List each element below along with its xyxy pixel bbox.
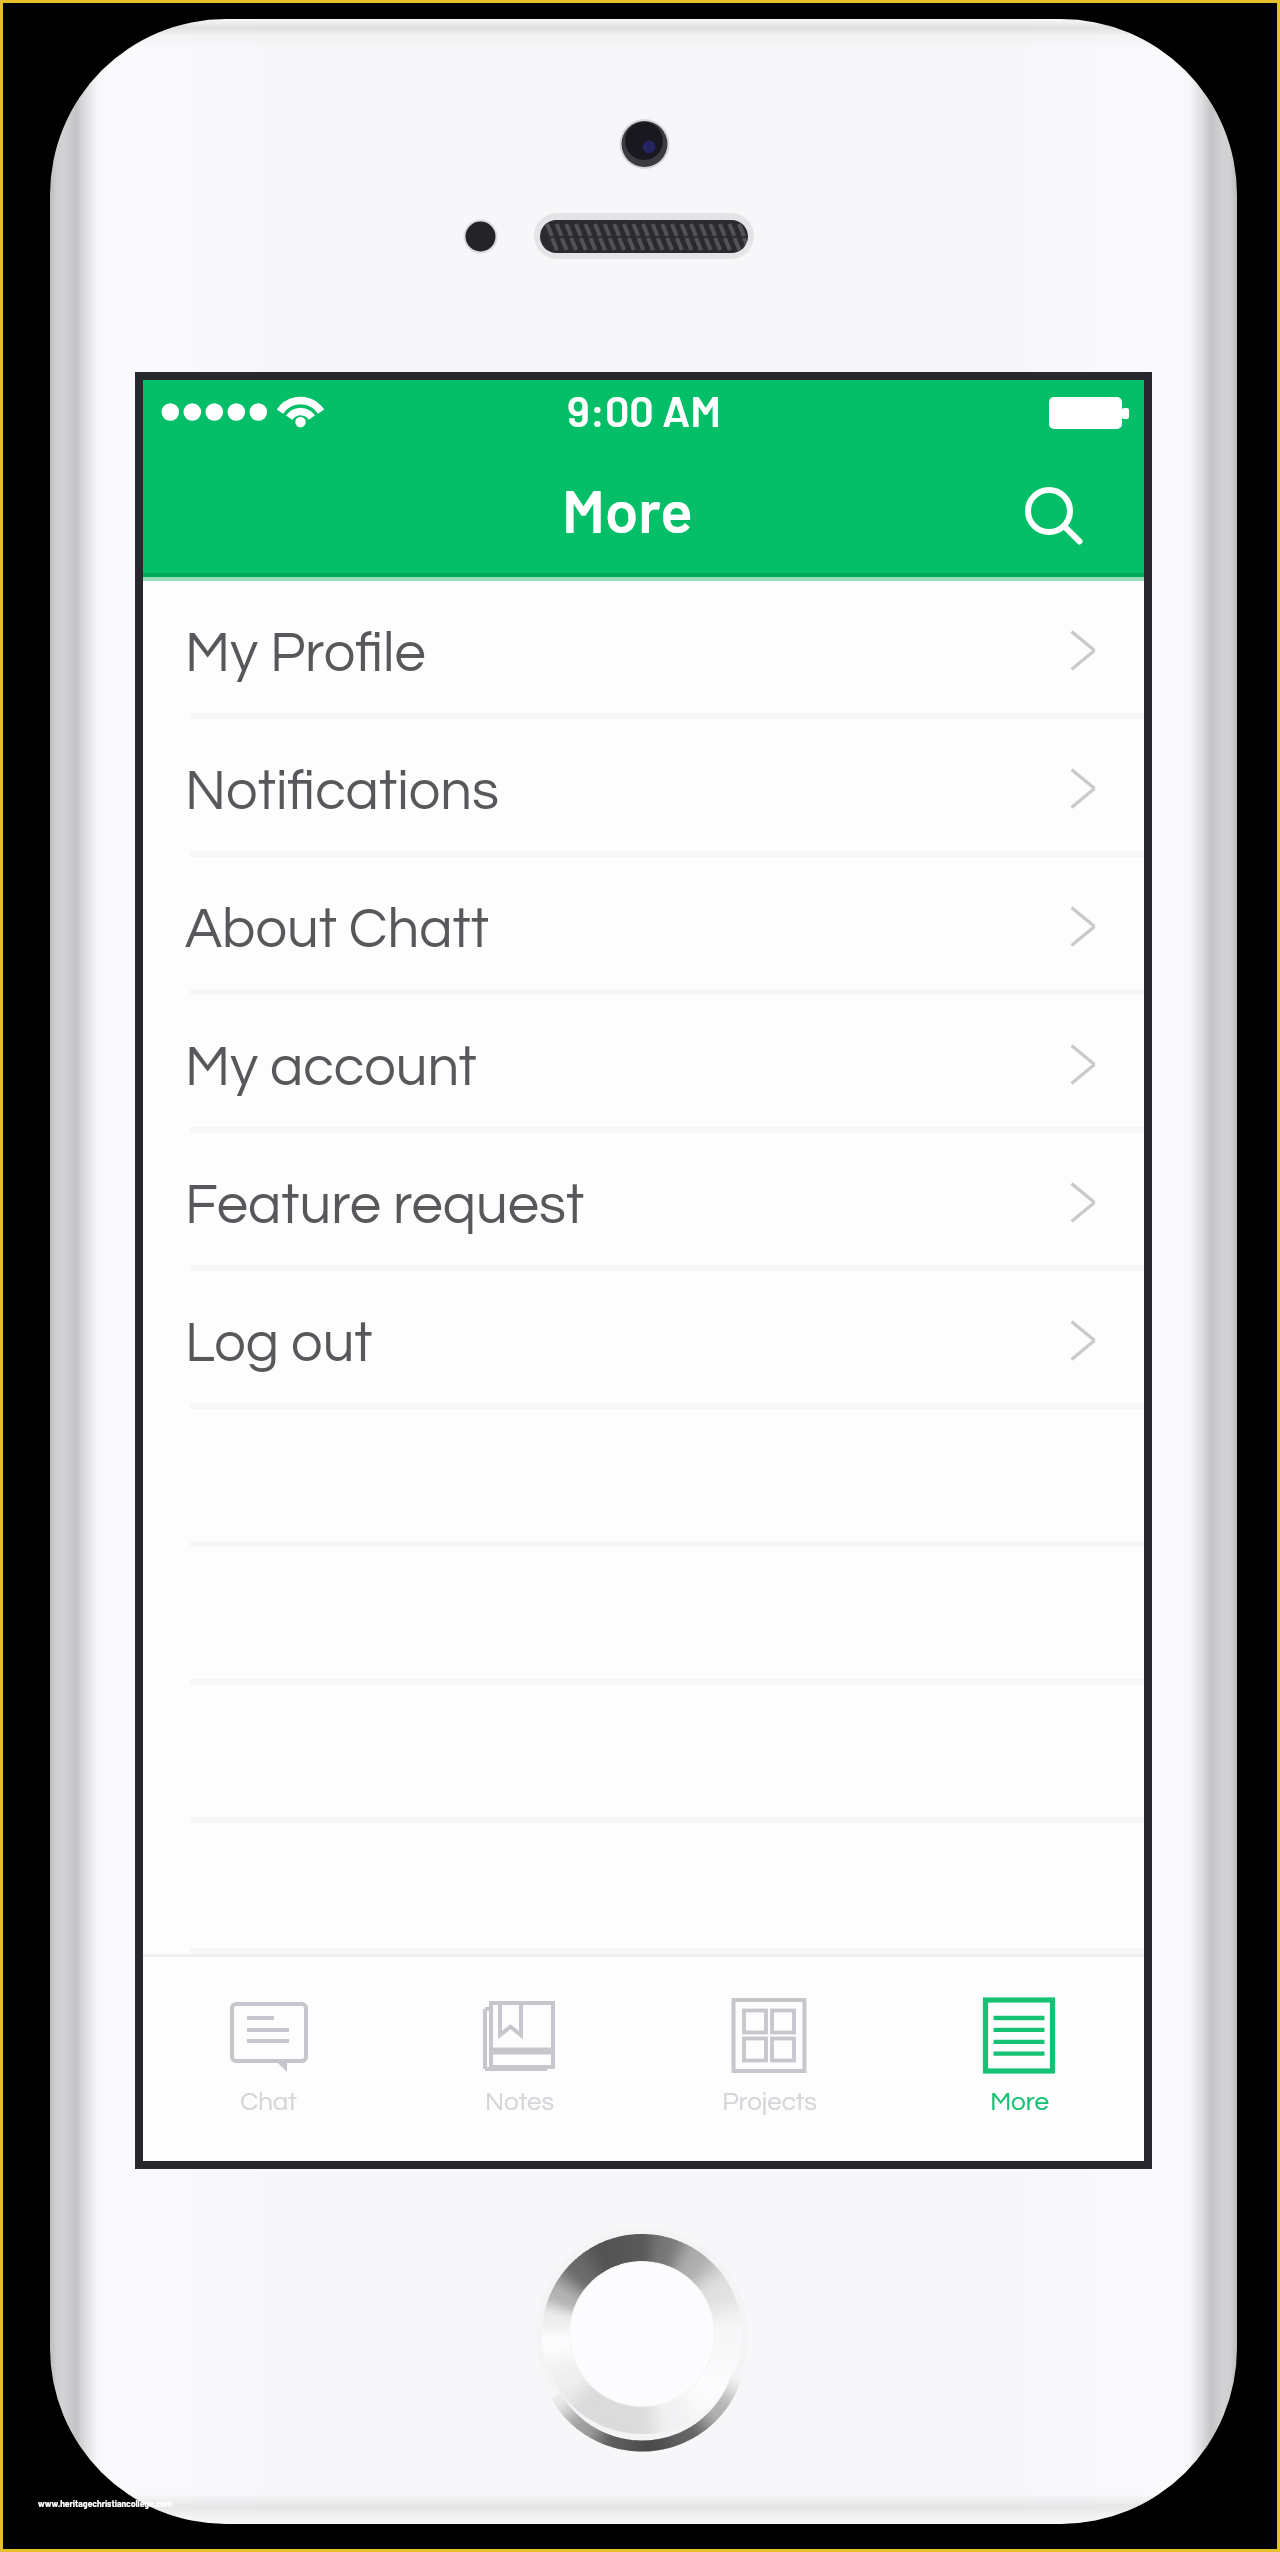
staticText: More (990, 2089, 1049, 2116)
button[interactable]: Search (1008, 471, 1098, 561)
button[interactable]: Log out (143, 1271, 1144, 1409)
staticText: Feature request (185, 1177, 585, 1235)
staticText: www.heritagechristiancollege.com (38, 2498, 173, 2508)
button[interactable]: About Chatt (143, 857, 1144, 995)
button[interactable]: More (894, 1957, 1144, 2161)
button[interactable]: Notifications (143, 719, 1144, 857)
button[interactable]: Notes (394, 1957, 644, 2161)
staticText: My Profile (185, 625, 426, 683)
button[interactable]: Chat (143, 1957, 394, 2161)
button[interactable]: My Profile (143, 581, 1144, 719)
button[interactable]: My account (143, 995, 1144, 1133)
staticText: Log out (185, 1315, 373, 1373)
staticText: About Chatt (185, 901, 490, 959)
staticText: Notifications (185, 763, 499, 821)
staticText: My account (185, 1039, 477, 1097)
staticText: Chat (240, 2089, 297, 2116)
button[interactable]: Projects (644, 1957, 894, 2161)
staticText: 9:00 AM (567, 384, 721, 436)
staticText: More (562, 473, 693, 545)
staticText: Notes (485, 2089, 554, 2116)
button[interactable]: Feature request (143, 1133, 1144, 1271)
staticText: Projects (722, 2089, 817, 2116)
